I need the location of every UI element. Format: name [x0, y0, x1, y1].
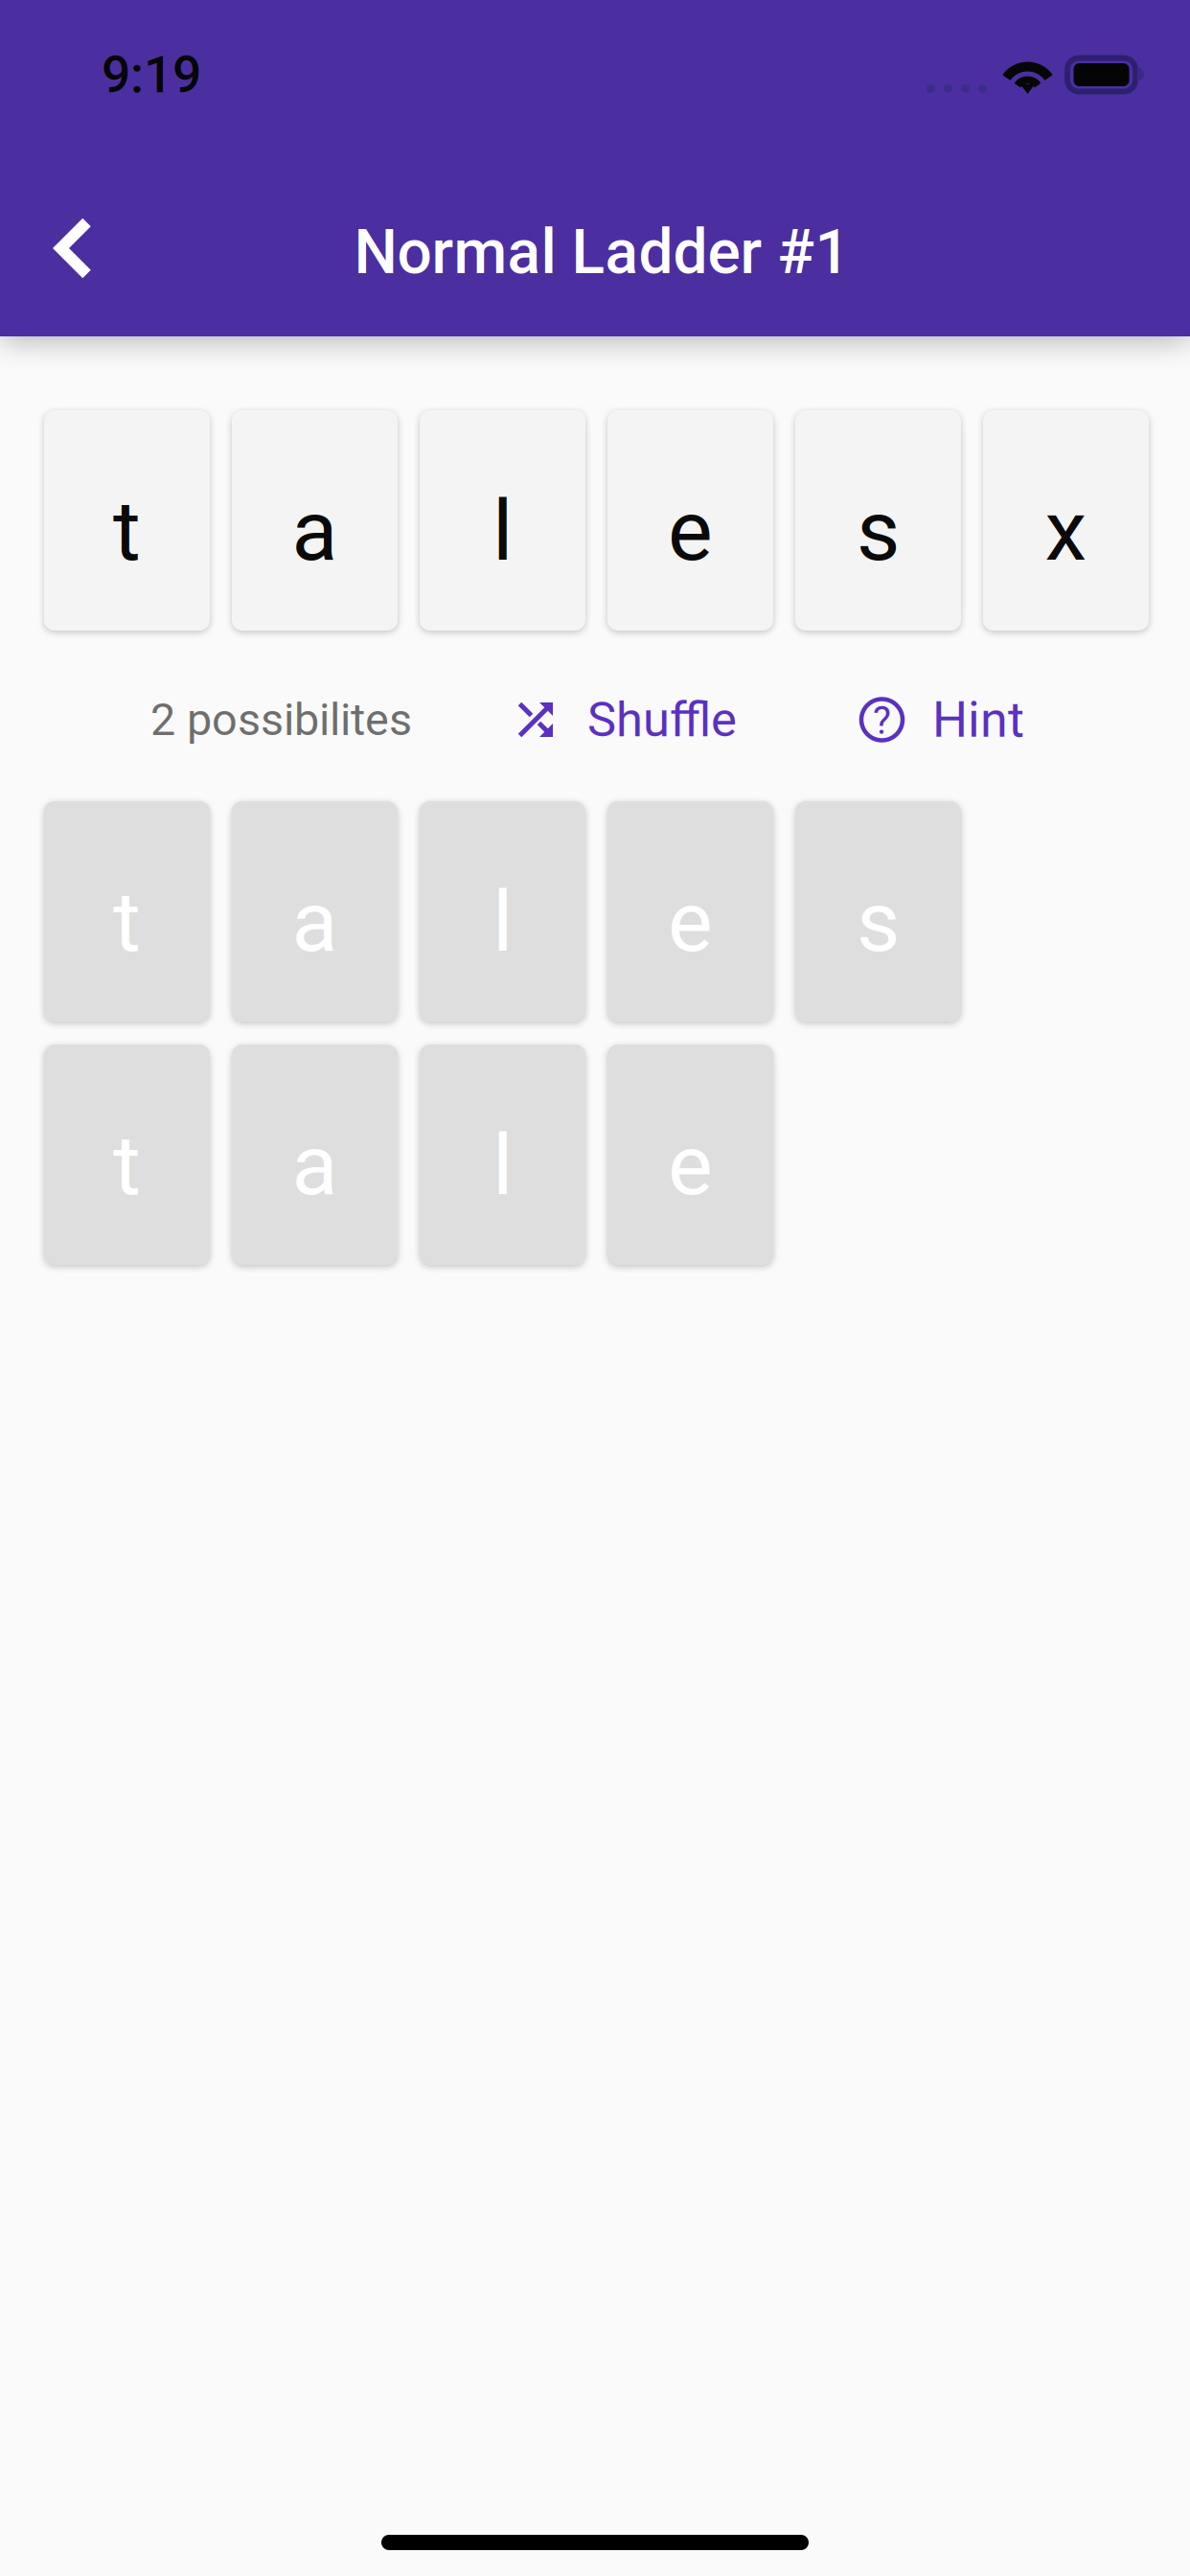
staticText: Normal Ladder #1: [354, 216, 849, 288]
button[interactable]: a: [232, 801, 398, 1022]
staticText: t: [113, 872, 141, 971]
staticText: l: [492, 481, 513, 580]
button[interactable]: a: [232, 1045, 398, 1265]
button[interactable]: t: [44, 410, 210, 631]
staticText: Shuffle: [587, 691, 737, 748]
staticText: a: [292, 872, 338, 971]
staticText: e: [668, 481, 713, 580]
button[interactable]: l: [420, 410, 585, 631]
button[interactable]: a: [232, 410, 398, 631]
staticText: e: [668, 872, 713, 971]
staticText: Hint: [932, 690, 1024, 749]
button[interactable]: t: [44, 801, 210, 1022]
button[interactable]: l: [420, 1045, 585, 1265]
staticText: 2 possibilites: [150, 694, 412, 746]
button[interactable]: e: [607, 1045, 773, 1265]
button[interactable]: Shuffle: [518, 691, 861, 748]
staticText: s: [857, 872, 900, 971]
staticText: t: [113, 481, 141, 580]
staticText: t: [113, 1116, 141, 1215]
button[interactable]: e: [607, 410, 773, 631]
staticText: s: [857, 481, 900, 580]
button[interactable]: ?: [861, 690, 1091, 749]
button[interactable]: t: [44, 1045, 210, 1265]
staticText: l: [492, 872, 513, 971]
staticText: x: [1045, 481, 1087, 580]
button[interactable]: x: [983, 410, 1149, 631]
staticText: e: [668, 1116, 713, 1215]
staticText: l: [492, 1116, 513, 1215]
staticText: 9:19: [102, 45, 201, 105]
staticText: a: [292, 1116, 338, 1215]
button[interactable]: s: [795, 801, 961, 1022]
staticText: a: [292, 481, 338, 580]
button[interactable]: e: [607, 801, 773, 1022]
button[interactable]: l: [420, 801, 585, 1022]
button[interactable]: s: [795, 410, 961, 631]
staticText: ?: [873, 698, 891, 743]
button[interactable]: Back: [0, 214, 140, 283]
